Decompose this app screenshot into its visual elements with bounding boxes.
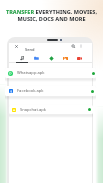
staticText: Whatsapp.apk — [17, 70, 45, 76]
staticText: MUSIC, DOCS AND MORE — [0, 15, 103, 22]
button[interactable]: Videos — [76, 55, 82, 61]
button[interactable]: Send — [25, 47, 35, 52]
button[interactable]: Photos — [62, 55, 68, 61]
button[interactable]: More options — [79, 44, 83, 48]
staticText: Facebook.apk — [17, 88, 44, 94]
button[interactable]: Music — [19, 55, 25, 61]
button[interactable]: Close — [14, 44, 19, 49]
button[interactable]: Search — [71, 44, 76, 49]
staticText: TRANSFER EVERYTHING. MOVIES, — [0, 8, 103, 15]
button[interactable]: Apps — [48, 55, 54, 61]
button[interactable]: Files — [33, 55, 39, 61]
staticText: Snapchat.apk — [20, 107, 46, 113]
button[interactable]: Facebook.apk — [5, 86, 96, 96]
button[interactable]: Whatsapp.apk — [5, 68, 96, 78]
button[interactable]: Snapchat.apk — [9, 105, 93, 114]
